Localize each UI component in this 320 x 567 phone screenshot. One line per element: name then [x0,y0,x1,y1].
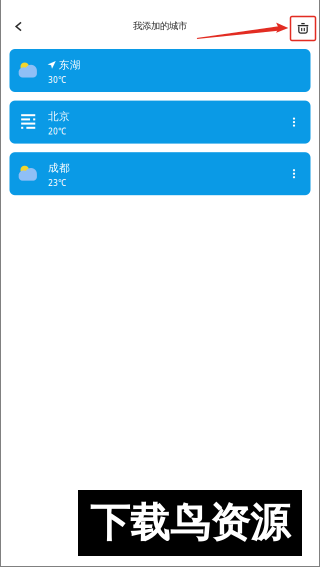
staticText: 东湖 [59,58,81,71]
staticText: 30°C [48,74,66,85]
button[interactable]: Delete all cities [290,16,315,40]
staticText: 20°C [48,126,66,137]
button[interactable]: 东湖 [9,49,310,92]
staticText: 成都 [48,161,70,175]
button[interactable]: 成都 [9,152,310,195]
button[interactable]: 北京 [9,101,310,144]
staticText: 北京 [48,110,70,123]
staticText: 下载鸟资源 [90,498,290,547]
staticText: 23°C [48,178,66,188]
staticText: 我添加的城市 [133,20,187,32]
button[interactable]: Back [4,12,32,40]
